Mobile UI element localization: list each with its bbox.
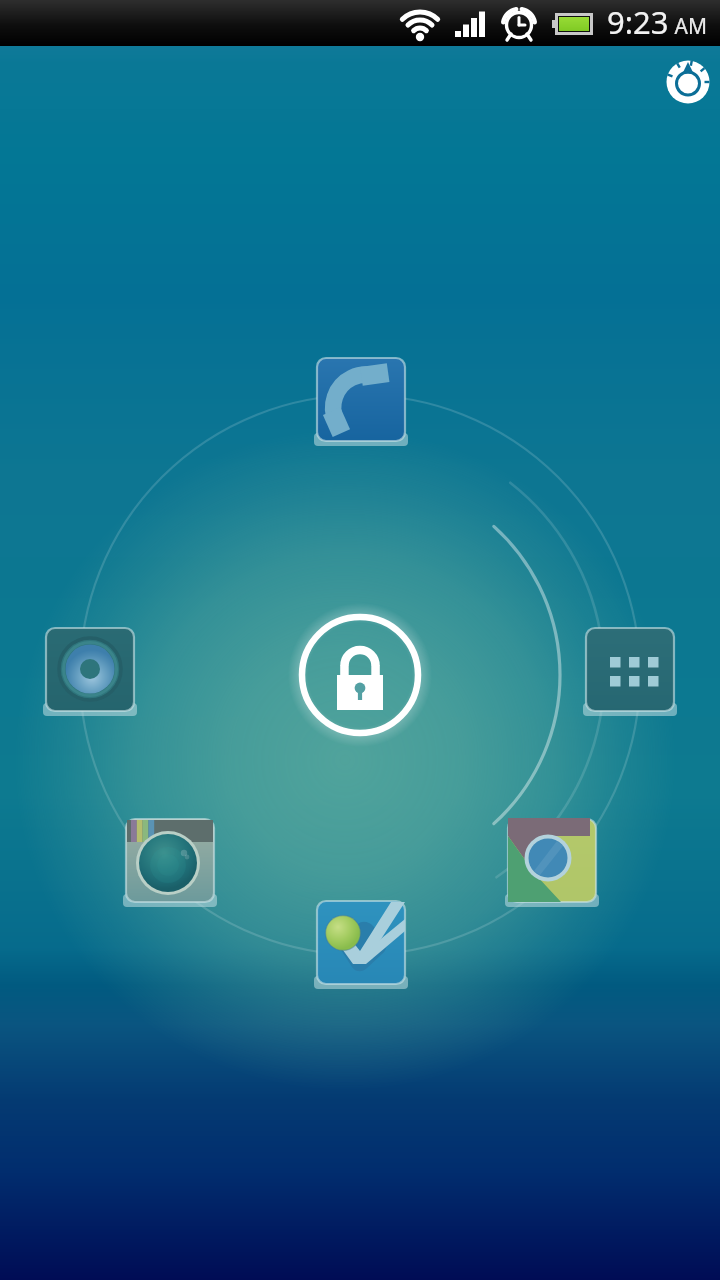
staticText: AM [669, 12, 707, 41]
button[interactable]: Chrome [503, 816, 601, 918]
staticText: 9:23 [607, 1, 669, 43]
button[interactable]: Unlock [288, 603, 432, 747]
button[interactable]: Check in [312, 898, 410, 1000]
button[interactable]: All apps [581, 625, 679, 727]
button[interactable]: Phone [312, 355, 410, 457]
button[interactable]: Sound [41, 625, 139, 727]
button[interactable]: Camera [121, 816, 219, 918]
button[interactable]: Timer widget [663, 57, 713, 107]
